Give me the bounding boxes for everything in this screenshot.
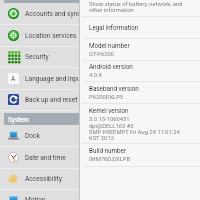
staticText: Kernel version — [89, 107, 129, 114]
button[interactable]: Legal information — [80, 17, 200, 38]
staticText: Accounts and sync — [25, 10, 79, 18]
staticText: Dock — [25, 132, 40, 140]
staticText: 3.0.15-1060431 dpi@DELL163 #3 SMP PREEMP… — [89, 116, 180, 141]
staticText: Location services — [25, 32, 77, 40]
staticText: P6200DXLP5 — [89, 94, 124, 101]
staticText: Model number — [89, 42, 130, 49]
staticText: Language and input — [25, 75, 79, 83]
button[interactable]: Dock — [0, 125, 79, 147]
button[interactable]: Date and time — [0, 147, 79, 169]
staticText: Legal information — [89, 24, 139, 31]
button[interactable]: A — [0, 68, 79, 90]
staticText: GT-P6200 — [89, 51, 115, 58]
staticText: Show status of battery, network, and oth… — [89, 1, 183, 14]
button[interactable]: Location services — [0, 25, 79, 47]
button[interactable]: Accounts and sync — [0, 3, 79, 25]
staticText: System — [8, 116, 29, 123]
staticText: Back up and reset — [25, 96, 78, 104]
button[interactable]: Motion — [0, 190, 79, 200]
button[interactable]: Accessibility — [0, 168, 79, 190]
button[interactable]: Kernel version — [80, 104, 200, 144]
staticText: Accessibility — [25, 175, 62, 183]
button[interactable]: Android version — [80, 61, 200, 81]
button[interactable]: Baseband version — [80, 82, 200, 103]
staticText: Android version — [89, 63, 133, 70]
staticText: Motion — [25, 196, 46, 200]
button[interactable]: Security — [0, 46, 79, 68]
button[interactable]: Back up and reset — [0, 89, 79, 111]
staticText: Build number — [89, 147, 127, 154]
staticText: A — [11, 75, 16, 83]
staticText: 4.0.4 — [89, 72, 102, 79]
staticText: Date and time — [25, 154, 66, 162]
staticText: IMM76D.DXLPB — [89, 156, 131, 163]
staticText: Baseband version — [89, 85, 139, 92]
staticText: Security — [25, 53, 49, 61]
button[interactable]: Build number — [80, 144, 200, 166]
button[interactable]: Model number — [80, 39, 200, 60]
